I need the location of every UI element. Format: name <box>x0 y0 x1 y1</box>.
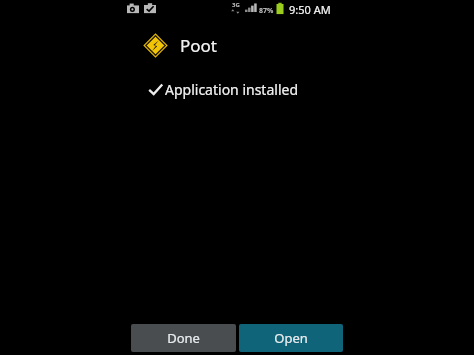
staticText: Done <box>167 329 200 347</box>
button[interactable]: Open <box>239 324 343 352</box>
staticText: 9:50 AM <box>289 2 331 17</box>
staticText: Open <box>274 329 308 347</box>
staticText: Application installed <box>165 80 298 99</box>
staticText: Poot <box>180 34 217 57</box>
staticText: 87% <box>259 6 274 16</box>
staticText: 3G <box>232 1 240 9</box>
button[interactable]: Done <box>131 324 236 352</box>
